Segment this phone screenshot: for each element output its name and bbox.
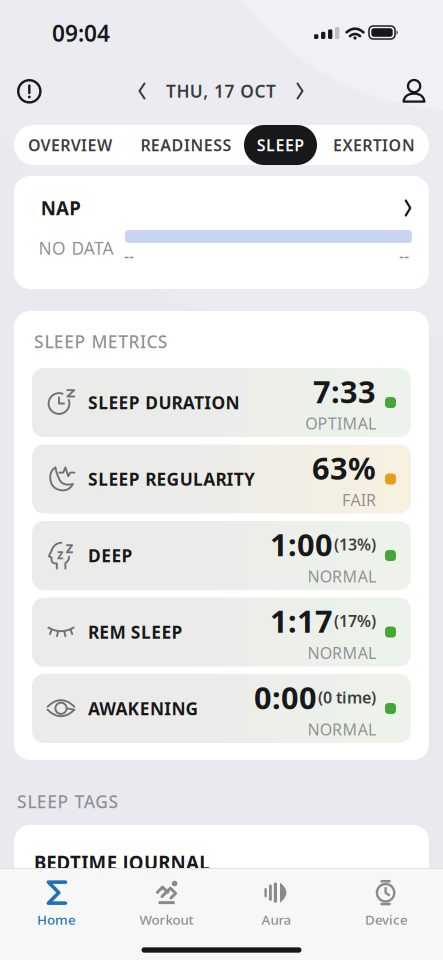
button[interactable]: Alerts [11,73,47,109]
button[interactable]: Aura [221,876,331,932]
button[interactable]: REM SLEEP [32,597,411,666]
button[interactable]: SLEEP DURATION [32,368,411,437]
button[interactable]: SLEEP REGULARITY [32,444,411,513]
staticText: OVERVIEW [28,134,112,156]
staticText: (17%) [334,610,376,631]
staticText: z [57,545,64,563]
staticText: OPTIMAL [305,413,376,434]
button[interactable]: THU, 17 OCT [166,79,276,102]
button[interactable]: READINESS [130,125,242,165]
staticText: THU, 17 OCT [166,79,276,102]
button[interactable]: AWAKENING [32,674,411,743]
staticText: SLEEP METRICS [34,330,168,353]
staticText: 1:17 [270,600,333,641]
staticText: 1:00 [270,524,333,565]
staticText: -- [399,245,409,267]
staticText: Workout [139,911,193,928]
staticText: NORMAL [307,566,376,587]
staticText: DEEP [88,544,133,567]
staticText: SLEEP TAGS [17,790,119,813]
button[interactable]: Profile [396,73,432,109]
staticText: SLEEP REGULARITY [88,467,255,490]
staticText: REM SLEEP [88,620,183,643]
button[interactable]: z [32,521,411,590]
staticText: SLEEP [257,134,304,156]
staticText: NO DATA [39,236,113,259]
staticText: Device [365,911,408,928]
button[interactable]: SLEEP [244,125,317,165]
staticText: z [65,536,73,558]
staticText: NAP [41,196,81,220]
staticText: 63% [312,447,376,488]
button[interactable]: EXERTION [322,125,426,165]
staticText: READINESS [140,134,232,156]
staticText: EXERTION [333,134,415,156]
staticText: Aura [261,911,291,928]
staticText: SLEEP DURATION [88,391,240,414]
staticText: 09:04 [52,18,110,48]
staticText: 0:00 [254,677,317,718]
staticText: 7:33 [313,371,376,412]
staticText: NORMAL [307,719,376,740]
staticText: (0 time) [318,687,376,708]
staticText: -- [124,245,134,267]
staticText: NORMAL [307,642,376,663]
button[interactable]: Next day [285,74,315,108]
staticText: BEDTIME JOURNAL [34,850,209,875]
button[interactable]: Workout [111,876,221,932]
staticText: (13%) [334,534,376,555]
button[interactable]: Device [331,876,441,932]
button[interactable]: Previous day [127,74,157,108]
button[interactable]: Home [1,876,111,932]
button[interactable]: OVERVIEW [15,125,125,165]
button[interactable]: BEDTIME JOURNAL [14,825,429,945]
staticText: AWAKENING [88,697,199,720]
button[interactable]: NAP [14,176,429,289]
staticText: Home [37,911,76,928]
staticText: FAIR [342,489,376,510]
